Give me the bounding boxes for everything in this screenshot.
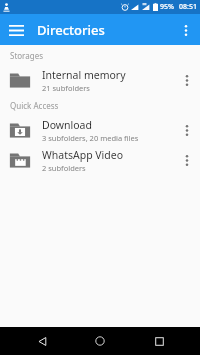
staticText: Quick Access [10,100,59,111]
button[interactable]: Open navigation drawer [4,18,28,42]
button[interactable]: WhatsApp Video [0,145,200,175]
button[interactable]: Internal memory [0,65,200,95]
staticText: 21 subfolders [42,83,90,93]
button[interactable]: More options for WhatsApp Video [175,148,199,172]
staticText: 2 subfolders [42,163,86,173]
staticText: Download [42,118,92,132]
button[interactable]: Back [25,327,59,355]
button[interactable]: Home [83,327,117,355]
staticText: Storages [10,50,44,61]
staticText: 95% [160,2,174,12]
staticText: Internal memory [42,68,126,82]
button[interactable]: Download [0,115,200,145]
button[interactable]: Recent apps [142,327,176,355]
staticText: 3 subfolders, 20 media files [42,133,139,143]
staticText: WhatsApp Video [42,148,124,162]
button[interactable]: More options for Internal memory [175,68,199,92]
staticText: Directories [37,21,105,39]
button[interactable]: More options [174,18,198,42]
staticText: 08:51 [179,2,197,12]
button[interactable]: More options for Download [175,118,199,142]
